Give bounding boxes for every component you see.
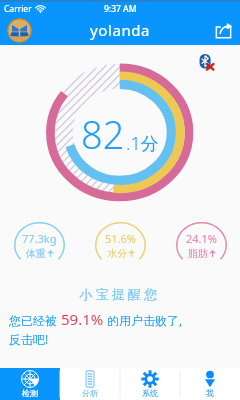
button[interactable]: 检测 <box>0 368 60 400</box>
button[interactable]: Share <box>211 18 235 42</box>
staticText: yolanda <box>90 20 151 40</box>
staticText: 系统 <box>142 388 158 398</box>
button[interactable]: 51.6% <box>95 222 146 268</box>
button[interactable]: 分析 <box>60 368 120 400</box>
staticText: 反击吧! <box>9 331 49 347</box>
staticText: Carrier <box>4 3 32 15</box>
staticText: 水分 <box>107 247 127 260</box>
staticText: 59.1% <box>61 309 104 329</box>
staticText: 51.6% <box>105 231 136 246</box>
staticText: 82 <box>81 108 125 160</box>
button[interactable]: 77.3kg <box>14 222 65 268</box>
staticText: 24.1% <box>186 231 217 246</box>
staticText: 体重 <box>26 247 46 260</box>
staticText: 脂肪 <box>188 247 208 260</box>
staticText: 分析 <box>82 388 98 398</box>
button[interactable]: Bluetooth disconnected <box>197 53 217 73</box>
staticText: 77.3kg <box>22 231 57 246</box>
staticText: 的用户击败了, <box>104 312 183 328</box>
staticText: 小宝提醒您 <box>0 286 240 302</box>
staticText: 9:37 AM <box>104 3 137 15</box>
staticText: 您已经被 <box>9 312 61 328</box>
staticText: .1分 <box>126 131 159 156</box>
button[interactable]: Profile <box>7 18 32 43</box>
button[interactable]: 我 <box>180 368 240 400</box>
button[interactable]: 24.1% <box>176 222 227 268</box>
button[interactable]: 系统 <box>120 368 180 400</box>
staticText: 检测 <box>22 388 38 398</box>
staticText: 我 <box>206 388 214 398</box>
